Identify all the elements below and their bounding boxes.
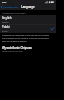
staticText: Polski <box>2 25 10 29</box>
button[interactable]: Polski <box>0 24 56 33</box>
staticText: SUGGESTED LANGUAGES <box>2 12 26 15</box>
staticText: Language <box>21 5 35 9</box>
staticText: Wyswietlanie Chipsow <box>2 46 32 50</box>
button[interactable]: English <box>0 15 56 24</box>
staticText: Changing the language of the app will no… <box>2 34 52 43</box>
staticText: Show chips in the lists <box>2 50 23 53</box>
staticText: English <box>2 20 9 23</box>
staticText: Polish <box>2 29 8 32</box>
staticText: Change Plan <box>3 5 18 9</box>
button[interactable]: Change Plan <box>0 5 19 9</box>
staticText: English <box>2 16 11 20</box>
other: Selected <box>50 27 54 30</box>
staticText: 9:41 <box>2 0 6 3</box>
